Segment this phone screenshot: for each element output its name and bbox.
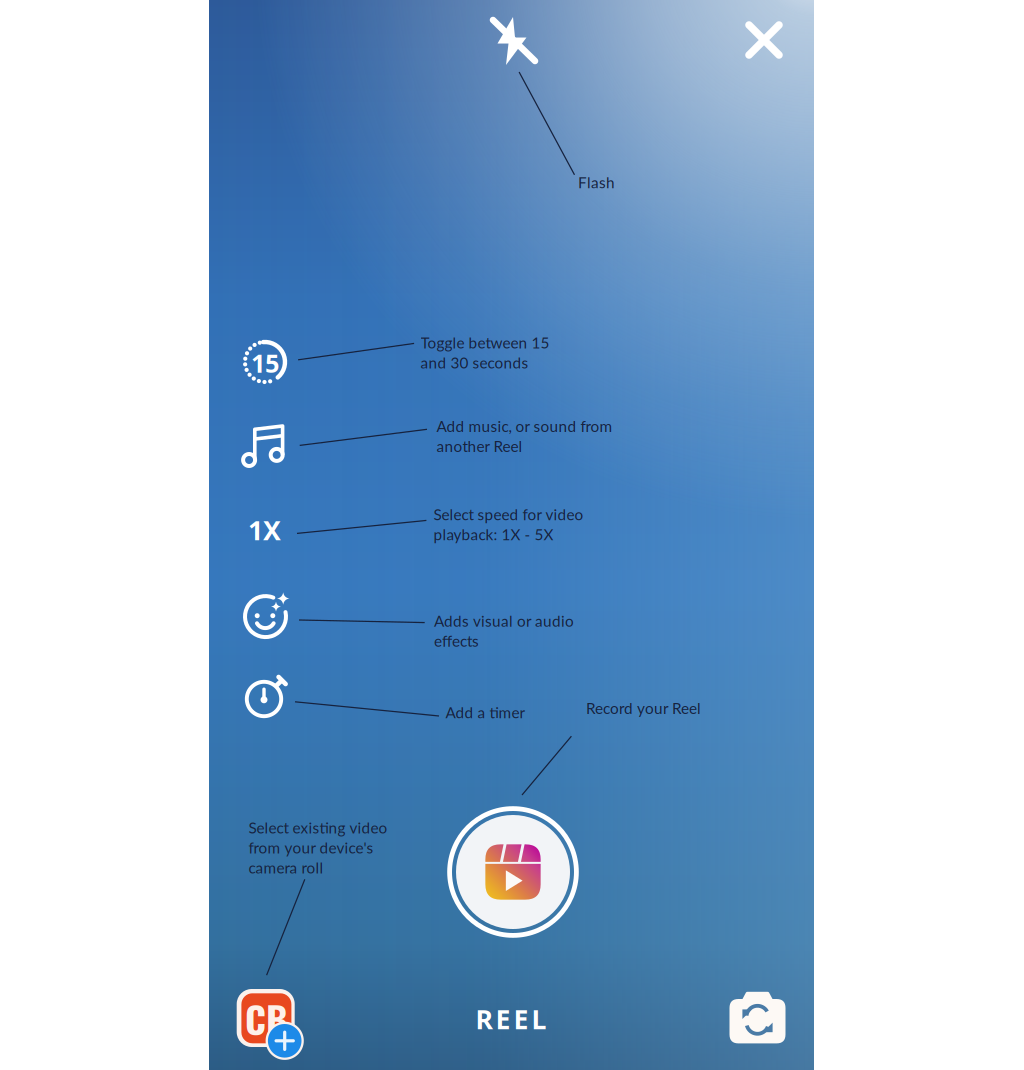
staticText: Add a timer xyxy=(445,703,525,721)
staticText: Toggle between 15 xyxy=(420,333,549,352)
button[interactable]: Record xyxy=(447,806,579,938)
button[interactable]: Audio xyxy=(240,417,306,483)
staticText: playback: 1X - 5X xyxy=(433,525,553,543)
staticText: camera roll xyxy=(248,858,323,877)
staticText: 1X xyxy=(248,512,281,548)
button[interactable]: Camera roll xyxy=(237,989,321,1070)
staticText: Add music, or sound from xyxy=(437,417,613,435)
staticText: Select speed for video xyxy=(433,505,583,523)
staticText: Flash xyxy=(578,173,615,191)
staticText: Select existing video xyxy=(248,818,387,837)
button[interactable]: Close xyxy=(732,8,796,72)
button[interactable]: Flash xyxy=(477,4,551,78)
button[interactable]: 1X xyxy=(239,505,289,555)
staticText: R E E L xyxy=(475,1001,546,1037)
button[interactable]: Duration 15 seconds xyxy=(236,329,302,395)
staticText: another Reel xyxy=(437,437,523,455)
button[interactable]: Timer xyxy=(240,669,306,735)
staticText: 15 xyxy=(251,346,279,380)
staticText: Record your Reel xyxy=(586,699,701,717)
staticText: effects xyxy=(434,632,479,650)
staticText: CB xyxy=(245,991,288,1046)
button[interactable]: Flip camera xyxy=(729,989,785,1044)
staticText: Adds visual or audio xyxy=(434,612,574,630)
staticText: and 30 seconds xyxy=(420,353,528,372)
staticText: from your device's xyxy=(248,838,373,857)
button[interactable]: Effects xyxy=(240,590,306,656)
